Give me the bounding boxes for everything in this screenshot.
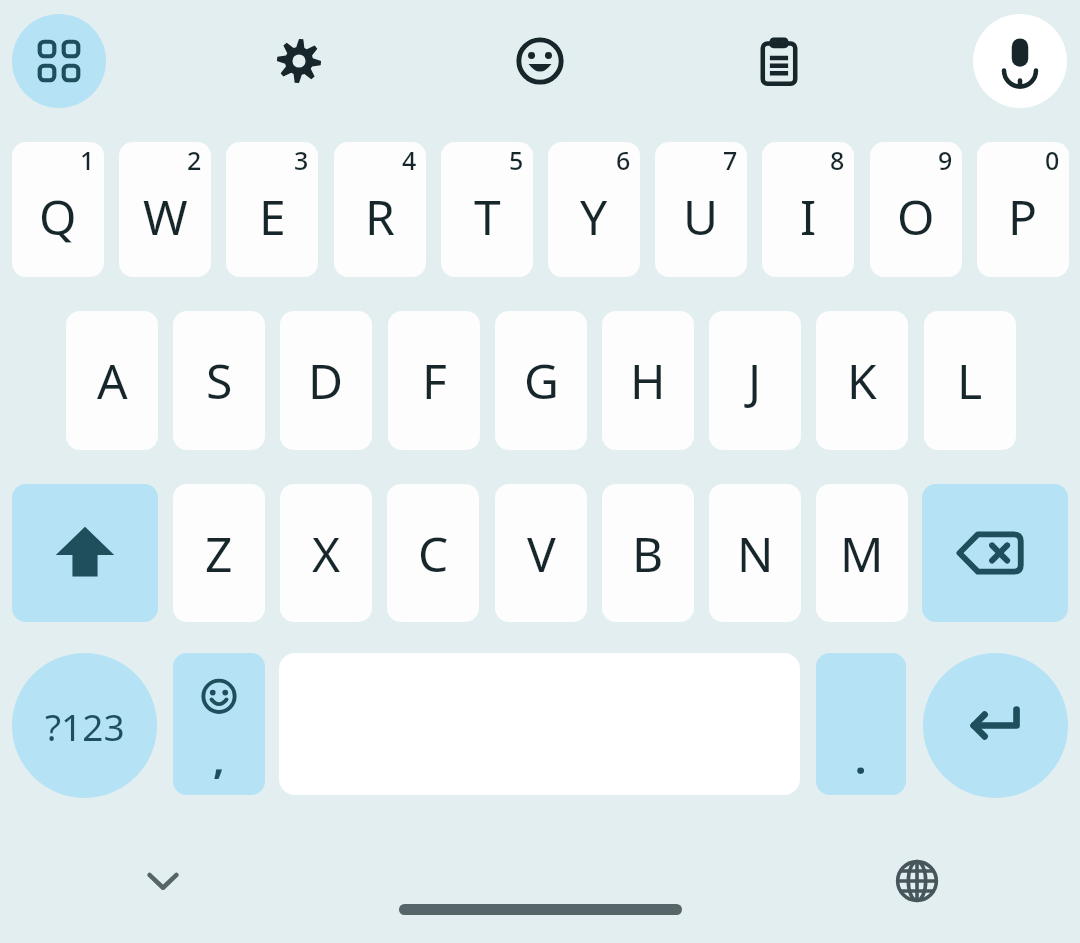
button[interactable]: X — [280, 484, 372, 622]
button[interactable]: 7 — [655, 142, 747, 277]
button[interactable]: F — [388, 311, 480, 450]
staticText: 0 — [1045, 143, 1060, 177]
button[interactable]: Change language — [872, 836, 962, 926]
staticText: Z — [205, 521, 233, 586]
button[interactable]: 2 — [119, 142, 211, 277]
staticText: 4 — [402, 143, 417, 177]
button[interactable]: Enter — [923, 653, 1068, 798]
staticText: B — [632, 521, 664, 586]
button[interactable]: L — [924, 311, 1016, 450]
staticText: 1 — [80, 143, 95, 177]
button[interactable]: 3 — [226, 142, 318, 277]
staticText: 7 — [723, 143, 738, 177]
staticText: U — [683, 184, 719, 249]
staticText: 9 — [938, 143, 953, 177]
staticText: , — [213, 731, 225, 785]
button[interactable]: 9 — [870, 142, 962, 277]
button[interactable]: Z — [173, 484, 265, 622]
staticText: M — [840, 521, 884, 586]
staticText: J — [748, 348, 762, 413]
button[interactable]: Backspace — [922, 484, 1068, 622]
staticText: F — [422, 348, 447, 413]
staticText: O — [897, 184, 935, 249]
staticText: W — [143, 184, 188, 249]
staticText: C — [418, 521, 449, 586]
button[interactable]: C — [387, 484, 479, 622]
button[interactable]: Settings — [252, 14, 346, 108]
button[interactable]: J — [709, 311, 801, 450]
staticText: 5 — [509, 143, 524, 177]
button[interactable]: A — [66, 311, 158, 450]
staticText: L — [957, 348, 983, 413]
button[interactable]: 5 — [441, 142, 533, 277]
staticText: I — [800, 184, 817, 249]
button[interactable]: Emoji — [493, 14, 587, 108]
staticText: T — [474, 184, 501, 249]
staticText: V — [527, 521, 556, 586]
staticText: S — [206, 348, 233, 413]
button[interactable]: V — [495, 484, 587, 622]
staticText: 2 — [187, 143, 202, 177]
button[interactable]: K — [816, 311, 908, 450]
button[interactable]: H — [602, 311, 694, 450]
button[interactable]: Clipboard — [732, 14, 826, 108]
staticText: G — [524, 348, 559, 413]
button[interactable]: M — [816, 484, 908, 622]
button[interactable]: Hide keyboard — [118, 836, 208, 926]
staticText: Q — [39, 184, 77, 249]
staticText: K — [847, 348, 877, 413]
button[interactable]: D — [280, 311, 372, 450]
button[interactable]: Emoji and comma — [173, 653, 265, 795]
staticText: D — [308, 348, 344, 413]
button[interactable]: Toolbar apps — [12, 14, 106, 108]
staticText: 3 — [294, 143, 309, 177]
staticText: H — [630, 348, 666, 413]
button[interactable]: 8 — [762, 142, 854, 277]
button[interactable]: G — [495, 311, 587, 450]
staticText: A — [97, 348, 128, 413]
button[interactable]: B — [602, 484, 694, 622]
button[interactable]: 6 — [548, 142, 640, 277]
staticText: 6 — [616, 143, 631, 177]
button[interactable]: Shift — [12, 484, 158, 622]
staticText: X — [312, 521, 341, 586]
staticText: . — [855, 731, 867, 785]
button[interactable]: ?123 — [12, 653, 157, 798]
button[interactable]: 4 — [334, 142, 426, 277]
button[interactable]: Voice input — [973, 14, 1067, 108]
staticText: E — [259, 184, 286, 249]
button[interactable]: 1 — [12, 142, 104, 277]
staticText: Y — [580, 184, 608, 249]
button[interactable]: S — [173, 311, 265, 450]
staticText: P — [1008, 184, 1038, 249]
staticText: 8 — [830, 143, 845, 177]
staticText: R — [365, 184, 395, 249]
staticText: N — [737, 521, 774, 586]
button[interactable]: N — [709, 484, 801, 622]
button[interactable]: 0 — [977, 142, 1069, 277]
button[interactable]: . — [816, 653, 906, 795]
staticText: ?123 — [45, 701, 125, 751]
